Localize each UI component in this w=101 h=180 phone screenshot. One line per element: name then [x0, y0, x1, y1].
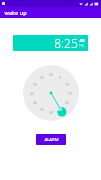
staticText: 8:25	[54, 35, 78, 51]
button[interactable]: Minute picker	[23, 65, 79, 121]
staticText: 10	[65, 82, 69, 87]
staticText: AM	[79, 39, 85, 43]
staticText: wake up	[4, 9, 27, 16]
staticText: 35	[40, 107, 44, 112]
staticText: PM	[79, 44, 84, 48]
staticText: ALARM	[44, 137, 59, 143]
staticText: 55	[40, 75, 44, 80]
staticText: 5	[59, 75, 61, 80]
staticText: 60	[49, 72, 53, 77]
staticText: 40	[33, 100, 37, 105]
staticText: 15	[68, 91, 72, 96]
staticText: 50	[33, 82, 37, 87]
staticText: 25	[58, 107, 62, 112]
button[interactable]: 8:25	[13, 35, 88, 51]
button[interactable]: ALARM	[36, 134, 66, 145]
staticText: 30	[49, 110, 53, 115]
staticText: 20	[65, 100, 69, 105]
staticText: 45	[30, 91, 34, 96]
